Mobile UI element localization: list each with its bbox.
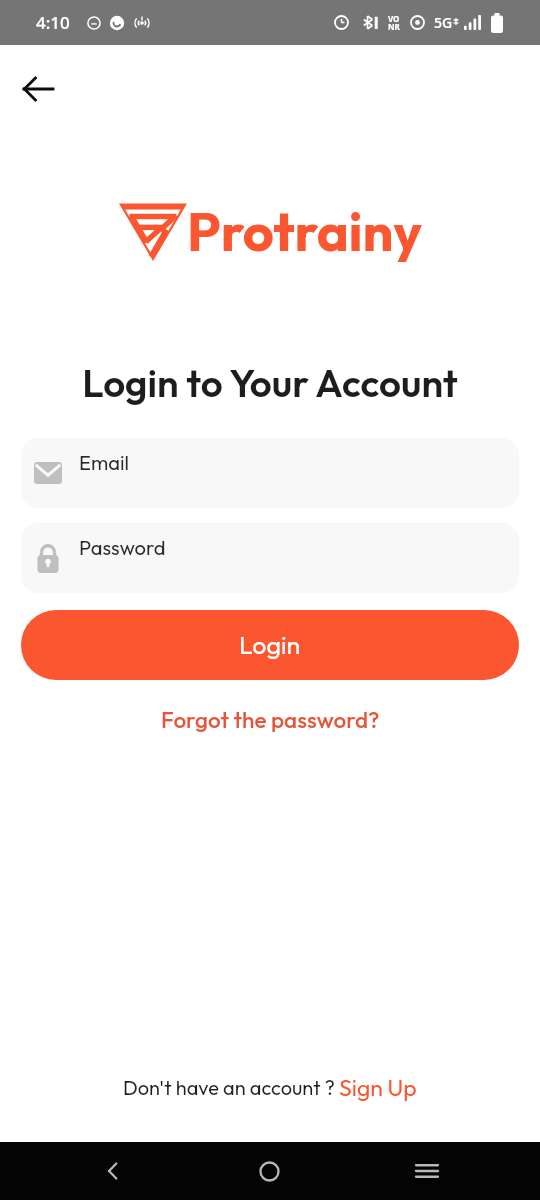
button[interactable]: Recent apps [348, 1142, 505, 1200]
button[interactable]: Login [21, 610, 519, 680]
staticText: Forgot the password? [161, 705, 380, 733]
staticText: Login [239, 629, 301, 661]
staticText: Login to Your Account [0, 358, 540, 407]
staticText: 5G [434, 13, 453, 32]
staticText: Email [79, 450, 129, 475]
staticText: Password [79, 535, 166, 560]
staticText: VO NR [388, 13, 400, 32]
staticText: 4:10 [36, 11, 70, 34]
button[interactable]: Sign Up [339, 1073, 417, 1102]
button[interactable]: Home [191, 1142, 348, 1200]
staticText: Protrainy [187, 197, 422, 265]
button[interactable]: Back [35, 1142, 191, 1200]
button[interactable]: Back [14, 65, 62, 113]
button[interactable]: Forgot the password? [151, 702, 390, 736]
staticText: Don't have an account ? [123, 1075, 339, 1100]
staticText: Sign Up [339, 1073, 417, 1102]
button[interactable]: Email [21, 438, 519, 508]
button[interactable]: Password [21, 523, 519, 593]
